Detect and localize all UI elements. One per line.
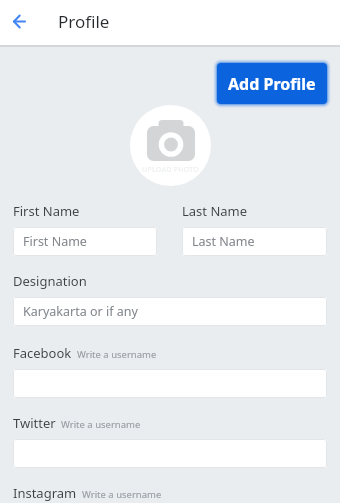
button[interactable]: First Name — [13, 227, 157, 256]
staticText: Last Name — [192, 233, 255, 250]
staticText: Write a username — [82, 488, 162, 501]
staticText: First Name — [23, 233, 87, 250]
button[interactable]: Upload photo — [130, 105, 211, 186]
staticText: Instagram — [13, 484, 77, 502]
staticText: Facebook — [13, 344, 72, 362]
staticText: Designation — [13, 272, 87, 290]
staticText: Write a username — [61, 418, 141, 431]
staticText: Profile — [58, 10, 110, 33]
button[interactable] — [13, 439, 327, 468]
button[interactable]: Karyakarta or if any — [13, 297, 327, 326]
button[interactable]: Add Profile — [217, 63, 327, 104]
staticText: Twitter — [13, 414, 56, 432]
staticText: Last Name — [182, 202, 248, 220]
staticText: Karyakarta or if any — [23, 303, 138, 320]
staticText: UPLOAD PHOTO — [142, 165, 200, 175]
button[interactable] — [13, 369, 327, 398]
staticText: First Name — [13, 202, 80, 220]
staticText: Add Profile — [228, 73, 316, 95]
staticText: Write a username — [77, 348, 157, 361]
button[interactable]: Back — [0, 0, 39, 42]
button[interactable]: Last Name — [182, 227, 327, 256]
